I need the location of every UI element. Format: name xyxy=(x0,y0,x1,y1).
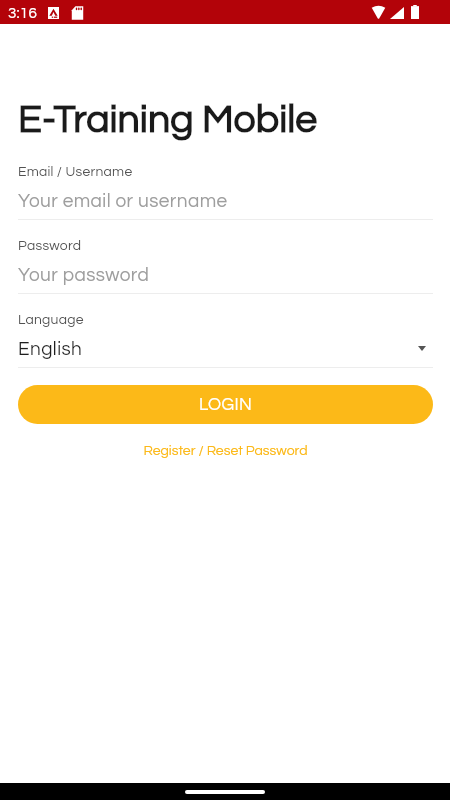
staticText: Password xyxy=(18,239,433,253)
button[interactable]: Home xyxy=(185,790,265,794)
other: Wi-Fi xyxy=(370,5,387,19)
staticText: Your email or username xyxy=(18,191,433,211)
button[interactable] xyxy=(18,310,433,367)
other: Open language list xyxy=(418,346,426,351)
button[interactable] xyxy=(18,162,433,220)
staticText: 3:16 xyxy=(8,6,37,22)
staticText: Register / Reset Password xyxy=(143,444,308,458)
staticText: Your password xyxy=(18,265,433,285)
button[interactable] xyxy=(18,236,433,294)
other: Mobile signal xyxy=(390,7,404,19)
staticText: LOGIN xyxy=(199,396,253,414)
button[interactable]: Register / Reset Password xyxy=(18,444,433,464)
other: Battery xyxy=(411,5,419,19)
staticText: Email / Username xyxy=(18,165,433,179)
staticText: E-Training Mobile xyxy=(18,100,433,140)
staticText: Language xyxy=(18,313,433,327)
other: SD card xyxy=(71,6,84,20)
staticText: English xyxy=(18,339,433,359)
other: App notification xyxy=(48,7,59,19)
button[interactable]: LOGIN xyxy=(18,385,433,424)
